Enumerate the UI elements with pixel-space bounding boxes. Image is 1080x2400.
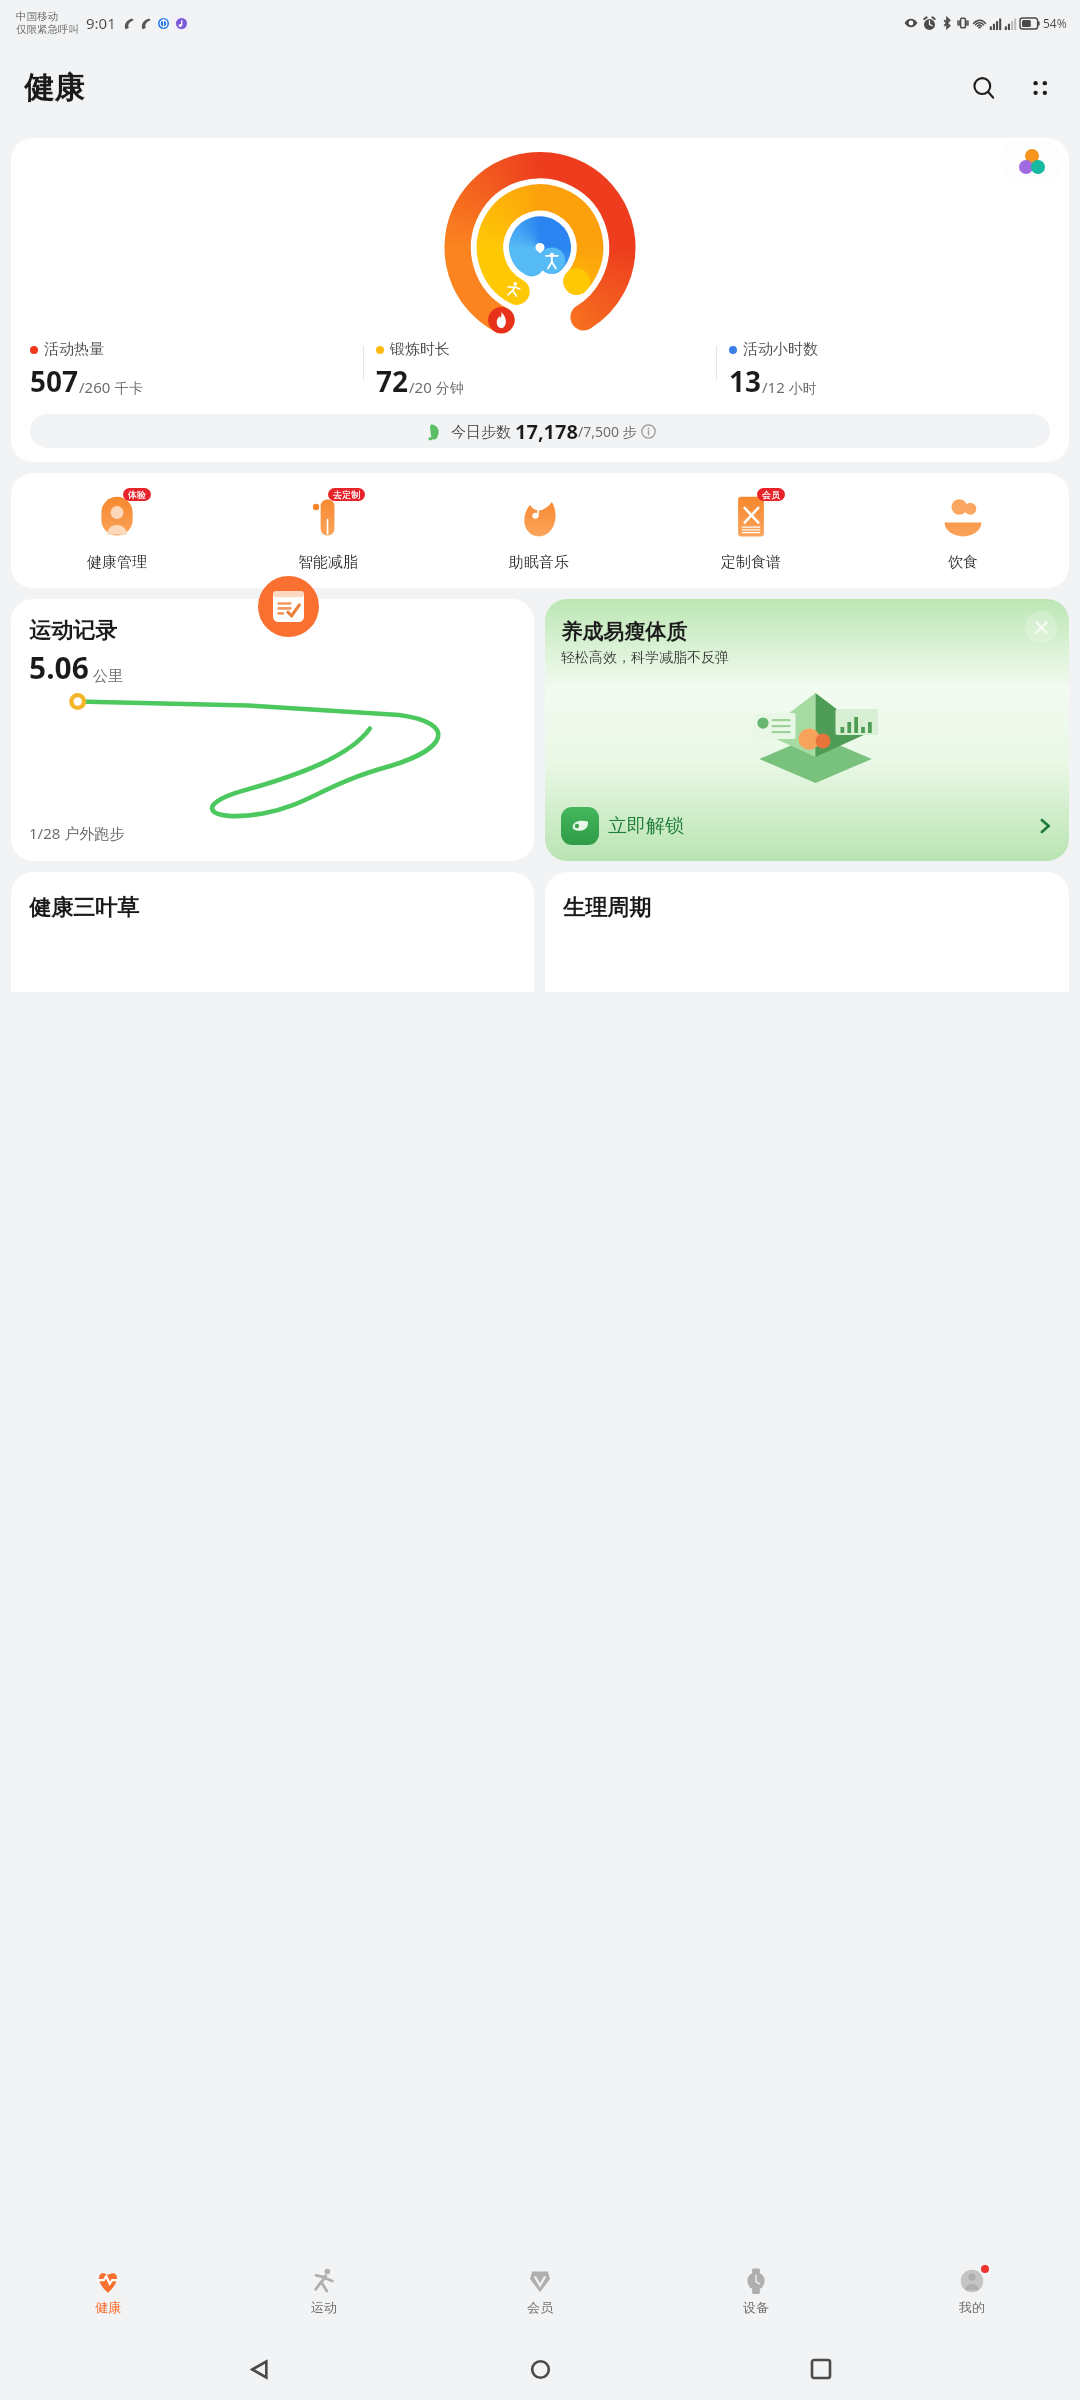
staticText: 健康管理 [87, 553, 147, 572]
staticText: 体验 [128, 489, 146, 500]
staticText: 5.06 [29, 647, 89, 688]
button[interactable]: 活动热量 [11, 138, 1069, 462]
button[interactable]: 会员 [645, 489, 857, 572]
button[interactable]: 记录 [258, 576, 319, 637]
staticText: 13 [729, 362, 762, 400]
staticText: 健康 [95, 2299, 121, 2315]
staticText: 生理周期 [563, 894, 651, 922]
staticText: 活动小时数 [743, 340, 818, 359]
staticText: 定制食谱 [721, 553, 781, 572]
staticText: 去定制 [333, 489, 360, 500]
staticText: 轻松高效，科学减脂不反弹 [561, 649, 729, 667]
button[interactable]: 生理周期 [545, 872, 1069, 992]
button[interactable]: 养成易瘦体质 [545, 599, 1069, 861]
staticText: 公里 [89, 665, 123, 685]
staticText: 活动热量 [44, 340, 104, 359]
staticText: 会员 [762, 489, 780, 500]
button[interactable]: 主屏幕 [518, 2347, 562, 2391]
staticText: 健康 [24, 69, 84, 107]
button[interactable]: 运动记录 [11, 599, 534, 861]
staticText: 17,178 [515, 418, 578, 445]
staticText: 设备 [743, 2299, 769, 2315]
staticText: 中国移动 [16, 10, 58, 23]
button[interactable]: 搜索 [962, 66, 1006, 110]
staticText: 锻炼时长 [390, 340, 450, 359]
button[interactable]: 健康 [0, 2242, 216, 2338]
staticText: 小时 [785, 378, 817, 397]
staticText: 54% [1043, 15, 1067, 31]
staticText: 运动记录 [29, 617, 117, 645]
button[interactable]: 运动 [216, 2242, 432, 2338]
staticText: 千卡 [111, 378, 143, 397]
staticText: 会员 [527, 2299, 553, 2315]
staticText: /7,500 步 [578, 422, 641, 441]
staticText: /260 [79, 377, 111, 397]
button[interactable]: 饮食 [857, 489, 1069, 572]
button[interactable]: 去定制 [222, 489, 433, 572]
staticText: 507 [30, 362, 79, 400]
staticText: 运动 [311, 2299, 337, 2315]
staticText: 仅限紧急呼叫 [16, 23, 79, 36]
staticText: /20 [409, 377, 432, 397]
staticText: 养成易瘦体质 [561, 619, 687, 645]
staticText: 智能减脂 [298, 553, 358, 572]
staticText: /12 [762, 377, 785, 397]
staticText: 今日步数 [451, 421, 515, 441]
button[interactable]: 设备 [648, 2242, 864, 2338]
staticText: 饮食 [948, 553, 978, 572]
button[interactable]: 返回 [237, 2347, 281, 2391]
button[interactable]: 数据中心 [1001, 140, 1063, 184]
button[interactable]: 我的 [864, 2242, 1080, 2338]
staticText: 立即解锁 [608, 814, 684, 838]
button[interactable]: 体验 [11, 489, 222, 572]
button[interactable]: 最近任务 [799, 2347, 843, 2391]
button[interactable]: 健康三叶草 [11, 872, 534, 992]
staticText: 分钟 [432, 378, 464, 397]
staticText: 助眠音乐 [509, 553, 569, 572]
staticText: 9:01 [86, 13, 116, 33]
button[interactable]: 会员 [432, 2242, 648, 2338]
button[interactable]: 助眠音乐 [433, 489, 645, 572]
staticText: 我的 [959, 2299, 985, 2315]
button[interactable]: 今日步数 [30, 414, 1050, 448]
staticText: 1/28 户外跑步 [29, 823, 125, 843]
staticText: 健康三叶草 [29, 894, 139, 922]
button[interactable]: 更多 [1018, 66, 1062, 110]
button[interactable]: 关闭 [1025, 611, 1057, 643]
staticText: 72 [376, 362, 409, 400]
